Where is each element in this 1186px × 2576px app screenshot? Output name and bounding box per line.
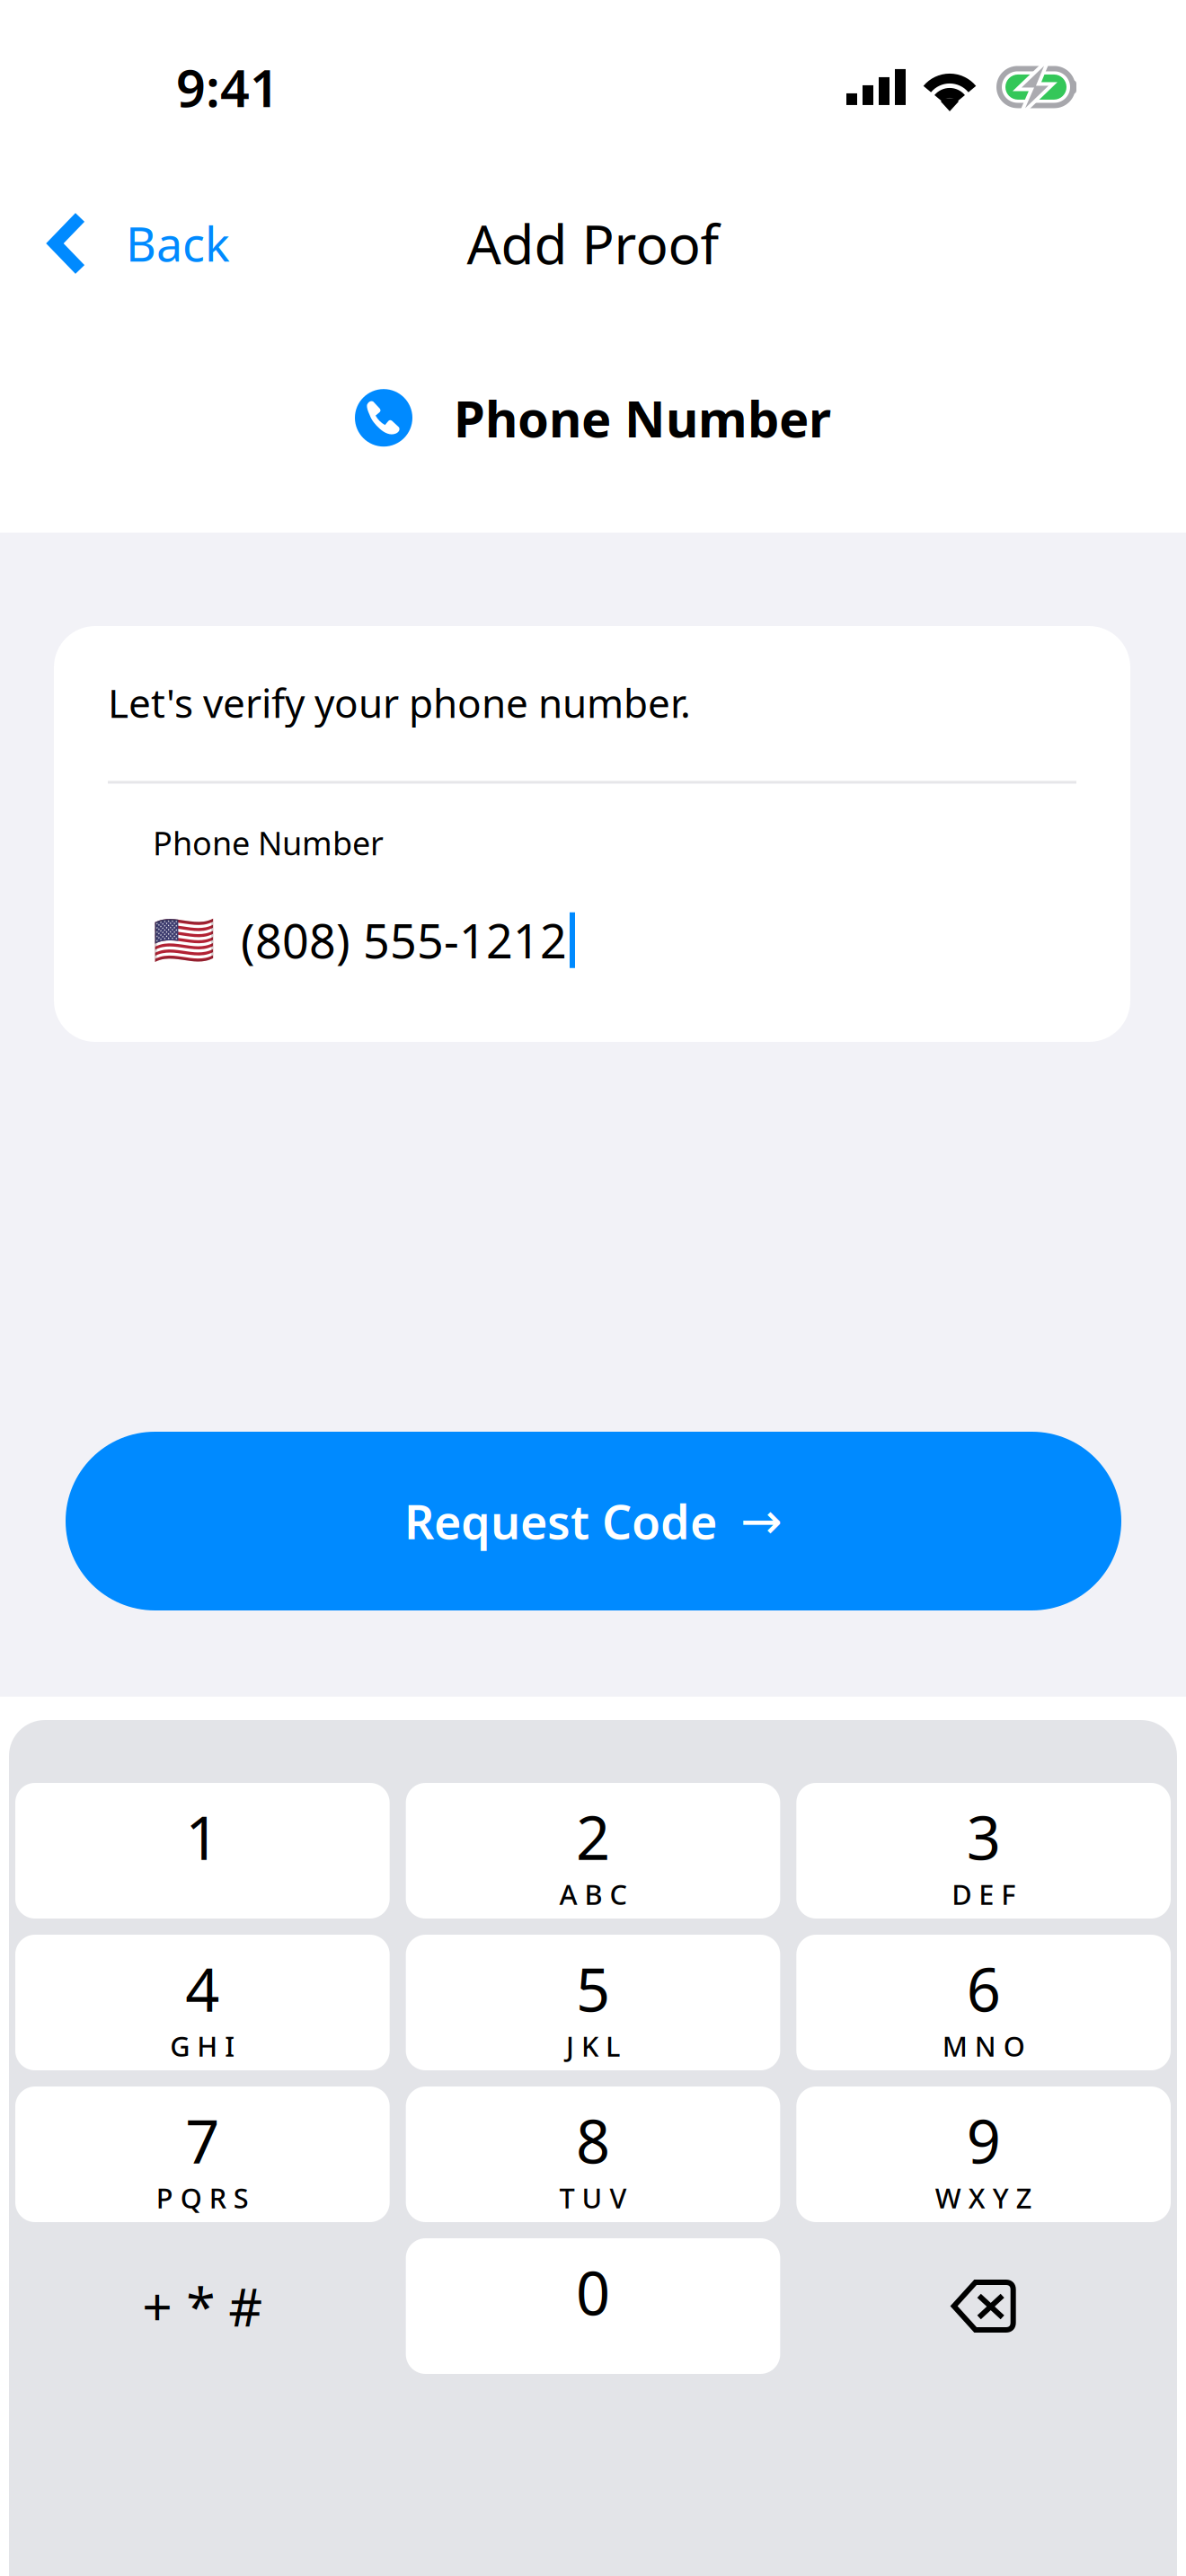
button[interactable]: Delete bbox=[796, 2241, 1171, 2371]
staticText: Phone Number bbox=[454, 384, 831, 451]
staticText: D E F bbox=[952, 1876, 1015, 1912]
staticText: → bbox=[740, 1493, 783, 1550]
staticText: 7 bbox=[185, 2101, 219, 2180]
staticText: + * # bbox=[142, 2271, 263, 2341]
staticText: 5 bbox=[576, 1949, 610, 2028]
staticText: 9 bbox=[967, 2101, 1001, 2180]
staticText: Request Code bbox=[404, 1490, 717, 1552]
staticText: T U V bbox=[559, 2179, 627, 2216]
button[interactable]: 7 bbox=[15, 2086, 390, 2222]
staticText: Add Proof bbox=[467, 208, 719, 279]
staticText: 2 bbox=[576, 1797, 610, 1876]
button[interactable]: 3 bbox=[796, 1783, 1171, 1919]
button[interactable]: 4 bbox=[15, 1935, 390, 2070]
staticText: 8 bbox=[576, 2101, 610, 2180]
button[interactable]: 2 bbox=[406, 1783, 780, 1919]
staticText: 0 bbox=[576, 2252, 610, 2332]
button[interactable]: 5 bbox=[406, 1935, 780, 2070]
staticText: 4 bbox=[185, 1949, 219, 2028]
button[interactable]: 0 bbox=[406, 2238, 780, 2374]
button[interactable]: 1 bbox=[15, 1783, 390, 1919]
button[interactable]: 6 bbox=[796, 1935, 1171, 2070]
button[interactable]: Request Code bbox=[66, 1432, 1121, 1610]
staticText: Let's verify your phone number. bbox=[108, 676, 691, 729]
staticText: 3 bbox=[967, 1797, 1001, 1876]
staticText: 1 bbox=[185, 1797, 219, 1876]
button[interactable]: 9 bbox=[796, 2086, 1171, 2222]
button[interactable]: + * # bbox=[15, 2241, 390, 2371]
staticText: 6 bbox=[967, 1949, 1001, 2028]
staticText: 🇺🇸 bbox=[153, 911, 216, 969]
staticText: P Q R S bbox=[156, 2179, 249, 2216]
staticText: (808) 555-1212 bbox=[241, 909, 567, 971]
staticText: 9:41 bbox=[176, 53, 279, 121]
staticText: Back bbox=[126, 212, 230, 274]
staticText: A B C bbox=[559, 1876, 627, 1912]
staticText: G H I bbox=[170, 2028, 235, 2064]
staticText: W X Y Z bbox=[935, 2179, 1032, 2216]
button[interactable]: Back bbox=[0, 198, 252, 288]
button[interactable]: 8 bbox=[406, 2086, 780, 2222]
staticText: J K L bbox=[566, 2028, 620, 2064]
staticText: Phone Number bbox=[153, 821, 384, 864]
staticText: M N O bbox=[942, 2028, 1025, 2064]
